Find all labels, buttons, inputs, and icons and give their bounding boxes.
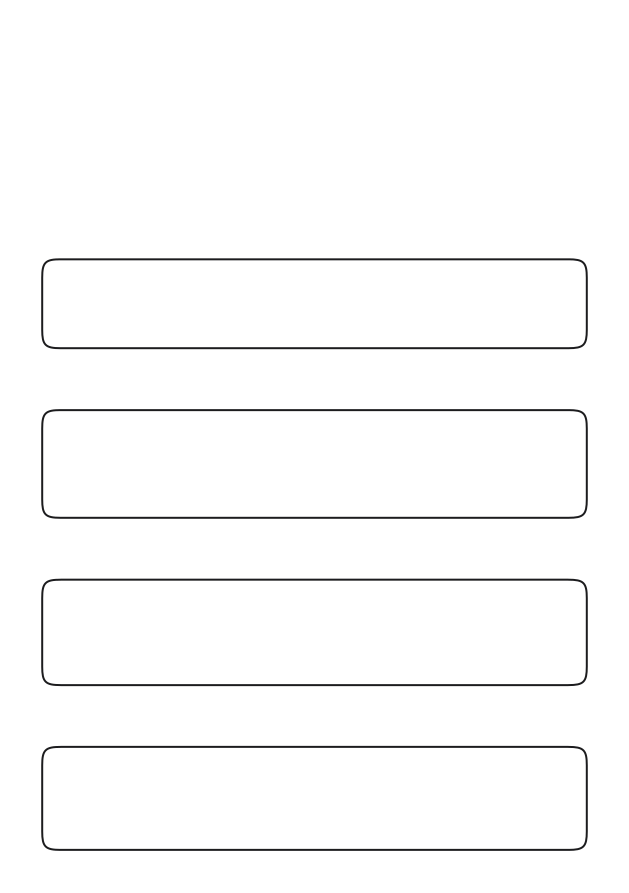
button[interactable]: Card 3	[42, 580, 587, 685]
button[interactable]: Card 2	[42, 410, 587, 518]
button[interactable]: Card 4	[42, 747, 587, 850]
button[interactable]: Card 1	[42, 259, 587, 348]
